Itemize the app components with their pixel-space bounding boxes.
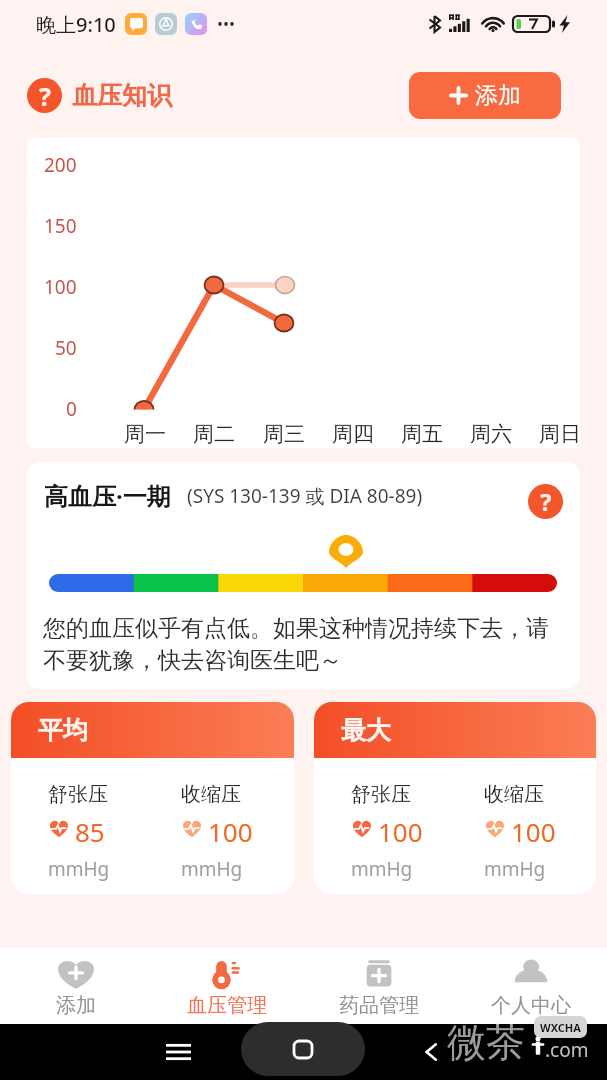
staticText: (SYS 130-139 或 DIA 80-89) [187,483,423,509]
staticText: 个人中心 [491,993,571,1018]
button[interactable]: 添加 [409,72,561,119]
staticText: 高血压·一期 [44,479,171,512]
staticText: 周一 [124,421,166,447]
staticText: 周日 [539,421,580,447]
staticText: 您的血压似乎有点低。如果这种情况持续下去，请 [43,614,549,643]
staticText: 舒张压 [48,782,108,807]
button[interactable]: 添加 [0,948,151,1024]
staticText: 周四 [332,421,374,447]
staticText: 平均 [38,715,88,746]
staticText: mmHg [48,856,110,882]
staticText: 血压知识 [72,80,172,111]
staticText: 最大 [341,715,391,746]
staticText: .com [545,1037,589,1063]
staticText: 微茶 [447,1018,525,1067]
staticText: 85 [75,814,105,842]
button[interactable]: 平均 [11,702,294,894]
staticText: 150 [44,213,77,239]
staticText: 100 [208,814,253,842]
button[interactable]: ? [27,78,172,113]
staticText: ? [39,79,51,113]
staticText: mmHg [351,856,413,882]
staticText: 100 [44,274,77,300]
button[interactable]: 血压管理 [151,948,303,1024]
staticText: 添加 [475,81,521,110]
staticText: 不要犹豫，快去咨询医生吧～ [43,646,342,675]
staticText: 周二 [193,421,235,447]
staticText: 50 [55,335,77,361]
staticText: 100 [378,814,423,842]
staticText: 200 [44,152,77,178]
button[interactable]: Back [420,1040,442,1064]
staticText: 100 [511,814,556,842]
staticText: WXCHA [540,1020,581,1035]
button[interactable]: 最大 [314,702,596,894]
staticText: mmHg [181,856,243,882]
staticText: 血压管理 [187,993,267,1018]
staticText: 0 [66,396,77,422]
staticText: 添加 [56,993,96,1018]
staticText: 舒张压 [351,782,411,807]
button[interactable]: Home [241,1022,365,1076]
staticText: ? [540,485,552,518]
staticText: 周六 [470,421,512,447]
staticText: 周五 [401,421,443,447]
button[interactable]: 帮助 [528,484,563,519]
staticText: 收缩压 [181,782,241,807]
button[interactable]: Menu [166,1043,191,1061]
button[interactable]: 药品管理 [303,948,455,1024]
button[interactable]: 个人中心 [455,948,607,1024]
staticText: 周三 [263,421,305,447]
staticText: 收缩压 [484,782,544,807]
staticText: ••• [217,13,236,35]
staticText: 晚上9:10 [36,11,116,38]
staticText: mmHg [484,856,546,882]
staticText: 药品管理 [339,993,419,1018]
